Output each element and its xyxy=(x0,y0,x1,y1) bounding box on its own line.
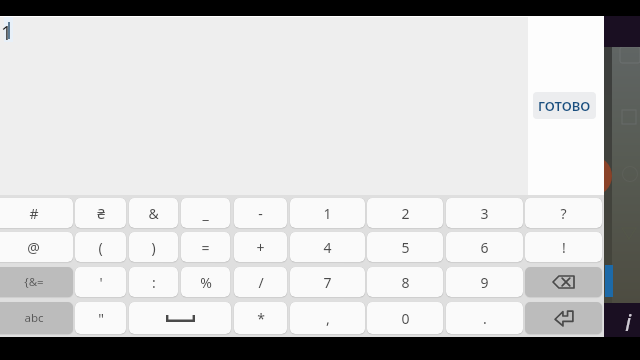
button[interactable]: # xyxy=(0,198,73,228)
button[interactable]: ( xyxy=(75,232,126,262)
button[interactable]: ? xyxy=(525,198,602,228)
staticText: % xyxy=(200,273,212,292)
staticText: * xyxy=(257,309,265,328)
staticText: ' xyxy=(99,273,103,292)
staticText: ( xyxy=(98,238,103,257)
button[interactable]: _ xyxy=(181,198,230,228)
staticText: abc xyxy=(24,310,44,326)
staticText: 9 xyxy=(480,273,489,292)
staticText: , xyxy=(326,309,330,328)
staticText: 5 xyxy=(401,238,410,257)
button[interactable]: 9 xyxy=(446,267,523,297)
button[interactable]: : xyxy=(129,267,178,297)
button[interactable]: {&= xyxy=(0,267,73,297)
staticText: 4 xyxy=(323,238,332,257)
button[interactable]: ₴ xyxy=(75,198,126,228)
button[interactable]: 0 xyxy=(367,302,443,334)
button[interactable]: - xyxy=(234,198,287,228)
staticText: - xyxy=(258,204,263,223)
button[interactable]: ГОТОВО xyxy=(533,92,596,119)
button[interactable]: * xyxy=(234,302,287,334)
button[interactable]: 6 xyxy=(446,232,523,262)
button[interactable]: / xyxy=(234,267,287,297)
button[interactable]: 1 xyxy=(290,198,365,228)
staticText: i xyxy=(625,305,632,337)
staticText: ₴ xyxy=(97,204,105,223)
staticText: # xyxy=(29,204,39,223)
staticText: _ xyxy=(202,204,209,223)
button[interactable]: Space xyxy=(129,302,231,334)
staticText: 7 xyxy=(323,273,332,292)
staticText: ) xyxy=(151,238,156,257)
staticText: . xyxy=(483,309,487,328)
button[interactable]: 3 xyxy=(446,198,523,228)
staticText: 8 xyxy=(401,273,410,292)
staticText: + xyxy=(256,238,265,257)
button[interactable]: " xyxy=(75,302,126,334)
staticText: & xyxy=(148,204,159,223)
button[interactable]: abc xyxy=(0,302,73,334)
button[interactable]: , xyxy=(290,302,365,334)
staticText: ? xyxy=(560,204,567,223)
button[interactable]: ! xyxy=(525,232,602,262)
button[interactable]: . xyxy=(446,302,523,334)
button[interactable]: ) xyxy=(129,232,178,262)
button[interactable]: 4 xyxy=(290,232,365,262)
button[interactable]: @ xyxy=(0,232,73,262)
staticText: {&= xyxy=(24,274,44,290)
staticText: 2 xyxy=(401,204,410,223)
button[interactable]: Enter xyxy=(525,302,602,334)
staticText: : xyxy=(152,273,156,292)
staticText: / xyxy=(258,273,264,292)
button[interactable]: ' xyxy=(75,267,126,297)
staticText: 3 xyxy=(480,204,489,223)
staticText: 0 xyxy=(401,309,410,328)
button[interactable]: & xyxy=(129,198,178,228)
button[interactable]: = xyxy=(181,232,230,262)
button[interactable]: Backspace xyxy=(525,267,602,297)
button[interactable]: 5 xyxy=(367,232,443,262)
staticText: 6 xyxy=(480,238,489,257)
staticText: 1 xyxy=(323,204,332,223)
staticText: ГОТОВО xyxy=(538,97,591,115)
button[interactable]: 8 xyxy=(367,267,443,297)
button[interactable]: 7 xyxy=(290,267,365,297)
staticText: = xyxy=(201,238,210,257)
button[interactable]: + xyxy=(234,232,287,262)
staticText: " xyxy=(98,309,104,328)
staticText: 1 xyxy=(1,20,12,42)
staticText: @ xyxy=(27,238,40,257)
button[interactable]: 2 xyxy=(367,198,443,228)
staticText: ! xyxy=(562,238,566,257)
button[interactable]: % xyxy=(181,267,230,297)
